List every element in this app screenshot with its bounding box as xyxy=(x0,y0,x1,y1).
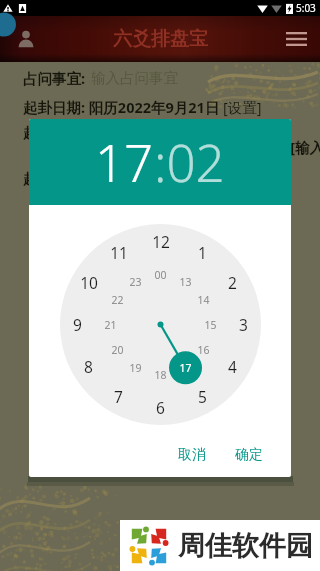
button[interactable]: Account xyxy=(11,24,41,54)
staticText: 9 xyxy=(73,314,82,335)
staticText: 1 xyxy=(198,242,207,263)
staticText: 20 xyxy=(111,343,124,357)
button[interactable]: Menu xyxy=(281,24,311,54)
staticText: 19 xyxy=(129,361,142,375)
staticText: 输入占问事宜 xyxy=(91,69,178,87)
staticText: 18 xyxy=(154,368,167,382)
staticText: 22 xyxy=(111,293,124,307)
staticText: 7 xyxy=(114,386,123,407)
staticText: [设置] xyxy=(223,97,262,117)
staticText: 4 xyxy=(228,356,237,377)
staticText: 占问事宜: xyxy=(23,68,86,88)
staticText: 11 xyxy=(110,242,128,263)
staticText: 起卦时辰: 酉时 xyxy=(23,122,118,142)
staticText: 2 xyxy=(228,272,237,293)
staticText: 15 xyxy=(204,318,217,332)
staticText: 12 xyxy=(152,231,170,252)
staticText: :02 xyxy=(154,127,225,196)
button[interactable]: 取消 xyxy=(170,443,214,467)
staticText: 00 xyxy=(154,268,167,282)
staticText: 13 xyxy=(179,275,192,289)
staticText: 周佳软件园 xyxy=(178,529,313,563)
staticText: 取消 xyxy=(178,446,206,464)
staticText: 时 [输入] xyxy=(272,137,320,157)
staticText: 16 xyxy=(197,343,210,357)
staticText: 起卦日期: 阳历2022年9月21日 xyxy=(23,97,220,117)
staticText: 10 xyxy=(80,272,98,293)
staticText: 14 xyxy=(197,293,210,307)
staticText: 17 xyxy=(179,361,192,375)
staticText: 起卦方式: 手动摇卦 xyxy=(23,168,147,188)
staticText: 5:03 xyxy=(296,1,316,15)
staticText: 六爻排盘宝 xyxy=(113,27,208,51)
staticText: 21 xyxy=(104,318,117,332)
staticText: 5 xyxy=(198,386,207,407)
staticText: 8 xyxy=(84,356,93,377)
staticText: 23 xyxy=(129,275,142,289)
staticText: 3 xyxy=(239,314,248,335)
staticText: 确定 xyxy=(235,446,263,464)
staticText: 17 xyxy=(95,127,154,196)
staticText: 6 xyxy=(156,397,165,418)
button[interactable]: 确定 xyxy=(227,443,271,467)
